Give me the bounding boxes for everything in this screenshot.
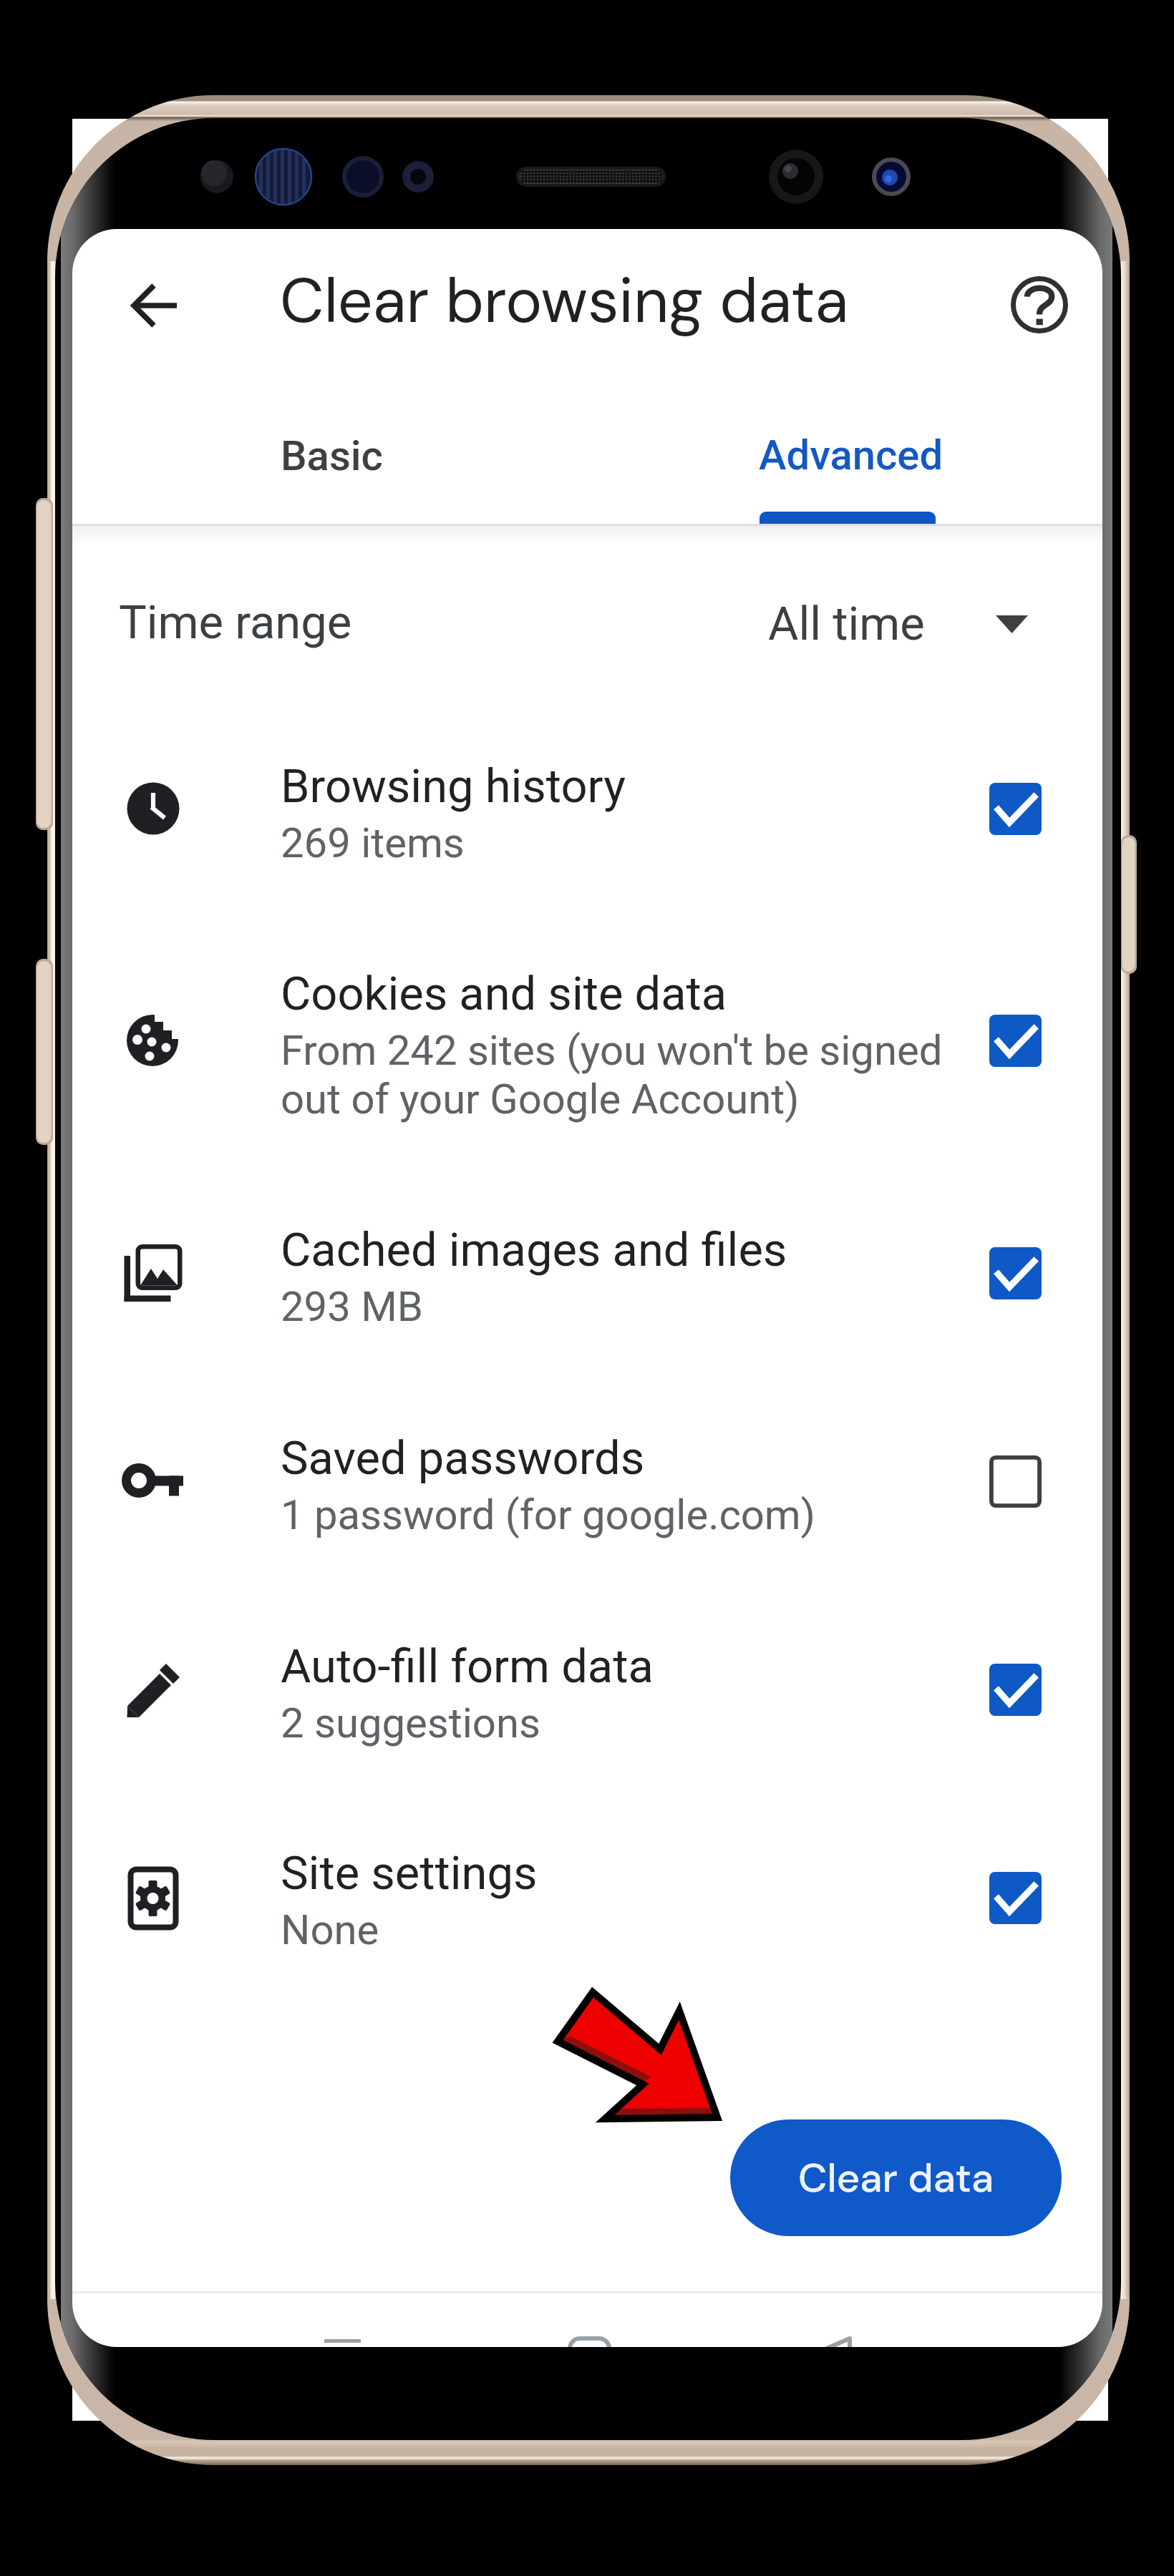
staticText: Time range bbox=[119, 595, 352, 650]
staticText: 2 suggestions bbox=[281, 1699, 540, 1747]
button[interactable]: Help bbox=[986, 251, 1093, 358]
button[interactable]: Auto-fill form data bbox=[72, 1628, 1102, 1800]
staticText: Browsing history bbox=[281, 759, 626, 814]
staticText: Clear data bbox=[798, 2152, 994, 2204]
staticText: Clear browsing data bbox=[280, 261, 849, 341]
button[interactable]: Clear data bbox=[730, 2119, 1062, 2236]
staticText: Cached images and files bbox=[281, 1223, 787, 1277]
button[interactable]: Saved passwords bbox=[72, 1420, 1102, 1591]
staticText: From 242 sites (you won't be signed bbox=[281, 1026, 943, 1075]
staticText: Cookies and site data bbox=[281, 967, 727, 1021]
staticText: None bbox=[281, 1906, 379, 1954]
button[interactable]: Basic bbox=[183, 358, 591, 524]
button[interactable]: Cookies and site data bbox=[72, 955, 1102, 1170]
button[interactable]: Cached images and files bbox=[72, 1211, 1102, 1383]
staticText: 269 items bbox=[281, 819, 465, 867]
button[interactable]: Browsing history bbox=[72, 748, 1102, 919]
staticText: 293 MB bbox=[281, 1282, 423, 1331]
staticText: Auto-fill form data bbox=[281, 1639, 654, 1694]
button[interactable]: Back bbox=[107, 259, 200, 352]
staticText: Basic bbox=[281, 431, 383, 480]
staticText: 1 password (for google.com) bbox=[281, 1491, 815, 1539]
staticText: Saved passwords bbox=[281, 1431, 645, 1485]
staticText: out of your Google Account) bbox=[281, 1075, 800, 1123]
button[interactable]: Advanced bbox=[591, 358, 999, 524]
button[interactable]: Site settings bbox=[72, 1835, 1102, 2006]
button[interactable]: Time range bbox=[72, 547, 1102, 661]
staticText: All time bbox=[768, 597, 925, 651]
staticText: Advanced bbox=[759, 431, 943, 479]
staticText: Site settings bbox=[281, 1846, 538, 1901]
